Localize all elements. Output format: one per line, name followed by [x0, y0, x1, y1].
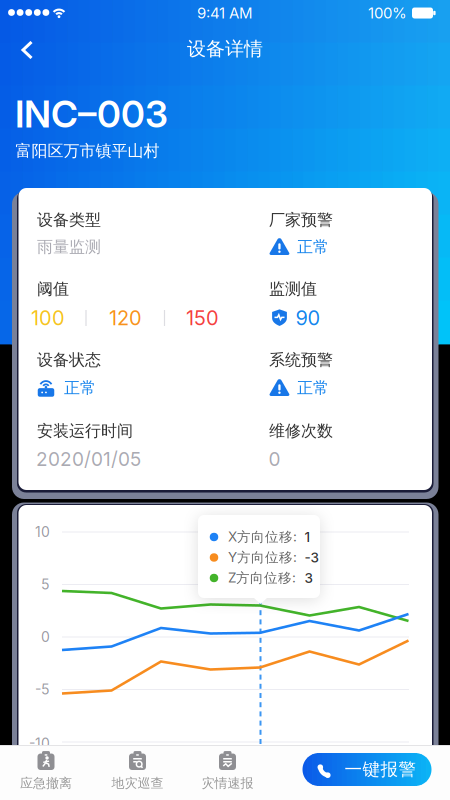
staticText: 5 — [41, 576, 50, 593]
staticText: 设备详情 — [187, 37, 263, 61]
staticText: 一键报警 — [344, 758, 416, 780]
button[interactable]: 灾情速报 — [187, 746, 267, 796]
staticText: 厂家预警 — [269, 210, 333, 230]
staticText: Y方向位移: — [228, 549, 297, 566]
staticText: 维修次数 — [269, 421, 333, 441]
staticText: 2020/01/05 — [36, 447, 141, 470]
staticText: 10 — [35, 523, 50, 540]
staticText: 雨量监测 — [37, 237, 101, 257]
staticText: -10 — [29, 735, 50, 752]
staticText: 100% — [368, 4, 407, 22]
staticText: 应急撤离 — [20, 775, 72, 791]
staticText: 富阳区万市镇平山村 — [15, 141, 159, 161]
staticText: 9:41 AM — [197, 4, 253, 22]
staticText: -5 — [35, 681, 50, 698]
staticText: X方向位移: — [228, 528, 297, 546]
staticText: 1 — [304, 529, 310, 545]
staticText: 灾情速报 — [201, 775, 253, 791]
staticText: -3 — [304, 549, 318, 566]
staticText: Z方向位移: — [228, 569, 296, 587]
staticText: 90 — [295, 306, 320, 330]
staticText: 正常 — [64, 378, 96, 398]
staticText: 正常 — [297, 237, 329, 257]
staticText: 正常 — [297, 378, 329, 398]
staticText: 100 — [31, 306, 65, 330]
button[interactable]: Back — [5, 28, 49, 72]
button[interactable]: 一键报警 — [302, 753, 431, 786]
staticText: 150 — [186, 306, 219, 330]
staticText: 地灾巡查 — [111, 775, 163, 791]
staticText: 120 — [109, 306, 142, 330]
staticText: 3 — [304, 570, 312, 586]
button[interactable]: 应急撤离 — [6, 746, 86, 796]
staticText: 阈值 — [37, 279, 69, 299]
staticText: 设备状态 — [37, 350, 101, 370]
staticText: 0 — [268, 447, 280, 470]
staticText: 设备类型 — [37, 210, 101, 230]
button[interactable]: 地灾巡查 — [97, 746, 177, 796]
staticText: 安装运行时间 — [37, 421, 133, 441]
staticText: 监测值 — [269, 279, 317, 299]
staticText: 0 — [41, 628, 50, 645]
staticText: INC–003 — [15, 92, 168, 136]
staticText: 系统预警 — [269, 350, 333, 370]
